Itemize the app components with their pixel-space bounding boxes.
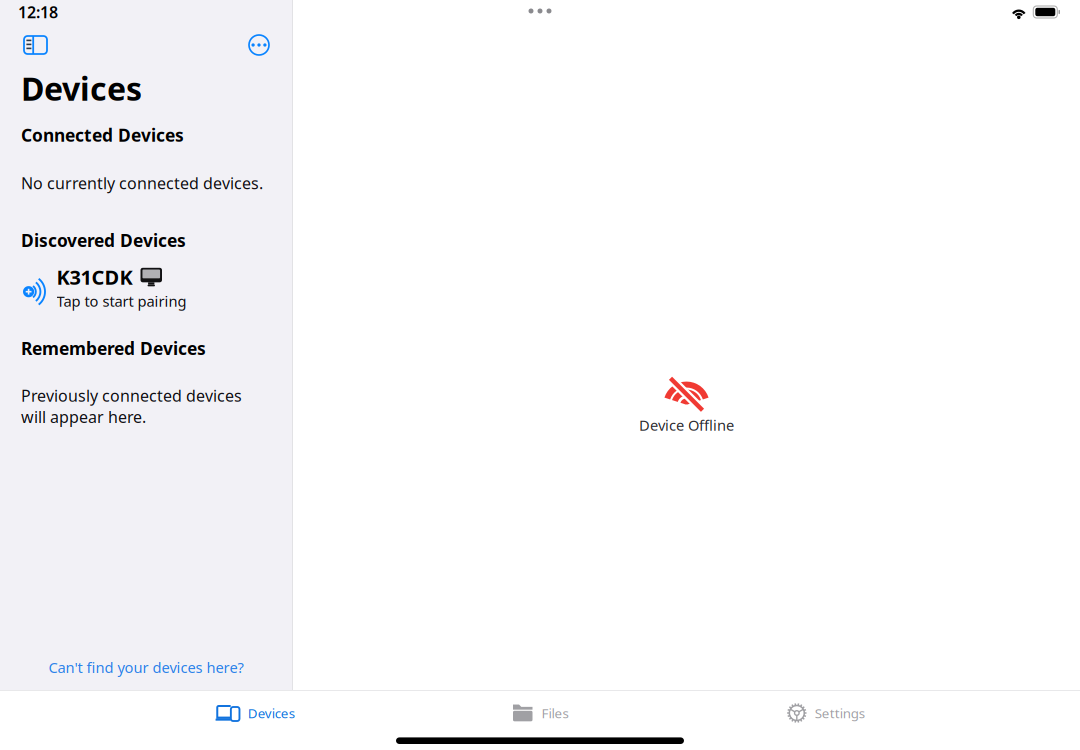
staticText: Settings: [815, 704, 865, 722]
staticText: Connected Devices: [21, 123, 184, 146]
button[interactable]: Toggle Sidebar: [17, 30, 54, 60]
staticText: 12:18: [18, 1, 58, 23]
staticText: Discovered Devices: [21, 229, 186, 252]
staticText: Files: [541, 704, 568, 722]
button[interactable]: K31CDK: [0, 252, 292, 311]
button[interactable]: Devices: [112, 690, 397, 736]
button[interactable]: Files: [397, 690, 683, 736]
staticText: Devices: [248, 704, 295, 722]
staticText: No currently connected devices.: [21, 172, 263, 194]
staticText: Can't find your devices here?: [48, 657, 243, 677]
staticText: Device Offline: [639, 415, 734, 435]
staticText: Tap to start pairing: [56, 291, 186, 311]
staticText: K31CDK: [56, 264, 132, 290]
staticText: Previously connected devices will appear…: [21, 385, 242, 427]
staticText: Remembered Devices: [21, 337, 206, 360]
button[interactable]: More: [242, 29, 276, 61]
staticText: Devices: [21, 67, 142, 109]
button[interactable]: Settings: [683, 690, 968, 736]
button[interactable]: Can't find your devices here?: [0, 651, 292, 683]
